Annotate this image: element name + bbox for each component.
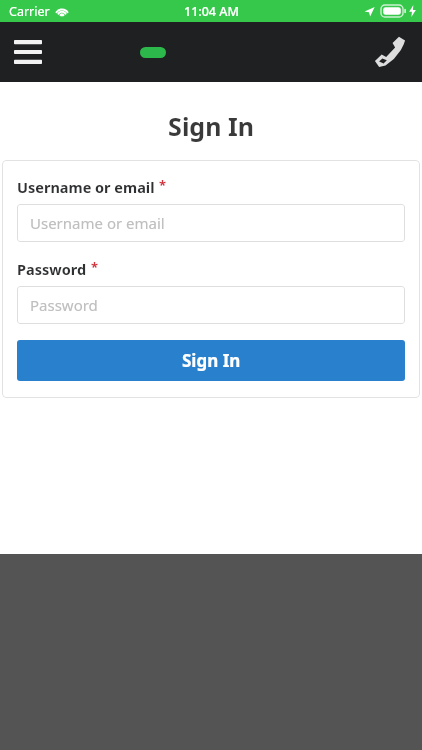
staticText: Carrier: [9, 3, 50, 20]
button[interactable]: Username or email: [17, 204, 405, 242]
staticText: Username or email: [30, 213, 165, 233]
staticText: *: [91, 258, 99, 276]
staticText: Sign In: [0, 109, 422, 143]
staticText: *: [159, 176, 167, 194]
button[interactable]: Password: [17, 286, 405, 324]
staticText: Username or email: [17, 177, 155, 197]
staticText: 11:04 AM: [184, 3, 239, 20]
button[interactable]: Call: [364, 26, 416, 78]
staticText: Password: [30, 295, 98, 315]
button[interactable]: Sign In: [17, 340, 405, 381]
button[interactable]: Menu: [4, 28, 52, 76]
staticText: Sign In: [182, 349, 241, 372]
staticText: Password: [17, 259, 87, 279]
